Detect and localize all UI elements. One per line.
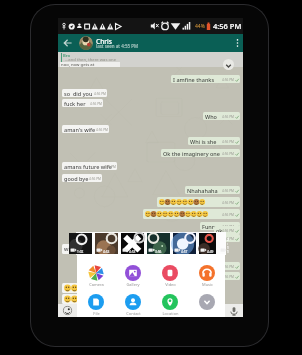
button[interactable]: ok xyxy=(214,226,240,234)
staticText: so did you xyxy=(64,90,93,97)
button[interactable]: amans future wife xyxy=(62,162,117,170)
button[interactable]: 4:56 PM xyxy=(157,197,240,207)
button[interactable]: Record voice message xyxy=(229,306,239,316)
button[interactable]: 4:56 PM xyxy=(62,283,96,293)
staticText: Who xyxy=(205,113,217,120)
staticText: Bro xyxy=(63,53,71,59)
staticText: File xyxy=(93,311,100,316)
button[interactable]: Whi is she xyxy=(188,137,240,145)
button[interactable]: Recent media xyxy=(147,233,170,254)
staticText: Gallery xyxy=(126,282,140,287)
staticText: 4:56 PM xyxy=(222,201,234,205)
staticText: Contact xyxy=(126,311,141,316)
button[interactable]: aman's wife xyxy=(62,125,109,133)
button[interactable]: Contact xyxy=(115,294,151,316)
button[interactable]: Music xyxy=(189,265,225,287)
button[interactable]: Video xyxy=(152,265,188,287)
button[interactable]: good bye xyxy=(62,174,102,182)
button[interactable]: yes xyxy=(210,262,240,270)
staticText: Chris xyxy=(96,37,112,46)
staticText: 4:56 PM xyxy=(222,213,234,217)
staticText: 4:56 PM xyxy=(222,229,234,233)
staticText: 4:56 PM xyxy=(222,115,234,119)
button[interactable]: More options xyxy=(232,34,243,52)
button[interactable]: Recent media xyxy=(121,233,144,254)
staticText: noo, now gets at xyxy=(61,62,95,67)
staticText: aman's wife xyxy=(64,126,96,133)
staticText: Whi is she xyxy=(190,138,217,145)
button[interactable]: I amfine thanks xyxy=(171,75,240,83)
staticText: 1:02 xyxy=(77,250,84,254)
staticText: Camera xyxy=(89,282,104,287)
button[interactable]: Location xyxy=(152,294,188,316)
button[interactable]: 4:56 PM xyxy=(143,209,240,219)
button[interactable]: Recent media xyxy=(69,233,92,254)
staticText: no xyxy=(214,273,221,280)
staticText: 4:56 PM xyxy=(222,275,234,279)
staticText: Music xyxy=(202,282,213,287)
button[interactable]: hm xyxy=(214,234,240,242)
staticText: ok xyxy=(216,227,223,234)
button[interactable]: Who xyxy=(203,112,240,120)
button[interactable]: Close attachments xyxy=(189,294,225,310)
staticText: Nhahahaha xyxy=(187,187,218,194)
staticText: 4:56 PM xyxy=(213,21,242,31)
staticText: what xyxy=(64,245,78,252)
button[interactable]: Back xyxy=(60,34,76,52)
staticText: 44% xyxy=(195,23,205,30)
button[interactable]: Emoji xyxy=(63,306,72,315)
staticText: 4:56 PM xyxy=(89,177,101,181)
staticText: 4:56 PM xyxy=(83,298,95,302)
staticText: 4:56 PM xyxy=(96,128,108,132)
staticText: yes xyxy=(212,263,221,270)
staticText: 4:56 PM xyxy=(222,78,234,82)
staticText: Video xyxy=(165,282,176,287)
staticText: 4:56 PM xyxy=(222,140,234,144)
staticText: Funny xyxy=(202,223,219,230)
staticText: 4:57 xyxy=(181,250,188,254)
button[interactable]: Funny xyxy=(200,222,240,230)
button[interactable]: no xyxy=(212,272,240,280)
staticText: good bye xyxy=(64,175,89,182)
staticText: 3:56 xyxy=(155,250,162,254)
staticText: 4:56 PM xyxy=(222,265,234,269)
button[interactable]: Recent media xyxy=(173,233,196,254)
staticText: 4:56 PM xyxy=(222,152,234,156)
staticText: ...and then, there was one xyxy=(65,57,117,63)
button[interactable]: so did you xyxy=(62,89,107,97)
button[interactable]: File xyxy=(78,294,114,316)
button[interactable]: fuck her xyxy=(62,99,103,107)
staticText: Location xyxy=(162,311,179,316)
staticText: 4:56 PM xyxy=(222,189,234,193)
staticText: 4:56 PM xyxy=(222,237,234,241)
button[interactable]: Recent media xyxy=(199,233,216,254)
button[interactable]: Gallery xyxy=(115,265,151,287)
staticText: 4:56 PM xyxy=(104,165,116,169)
button[interactable]: 4:56 PM xyxy=(62,294,96,304)
staticText: 4:49 xyxy=(207,250,214,254)
button[interactable]: Nhahahaha xyxy=(185,186,240,194)
staticText: I amfine thanks xyxy=(173,76,215,83)
button[interactable]: Scroll to bottom xyxy=(223,59,234,70)
staticText: 4:56 PM xyxy=(90,102,102,106)
button[interactable]: Recent media xyxy=(95,233,118,254)
staticText: 4:56 PM xyxy=(222,225,234,229)
staticText: amans future wife xyxy=(64,163,112,170)
staticText: fuck her xyxy=(64,100,86,107)
button[interactable]: Camera xyxy=(78,265,114,287)
staticText: 4:53 xyxy=(103,250,110,254)
button[interactable]: Ok the imaginery one xyxy=(161,149,240,157)
staticText: last seen at 4:55 PM xyxy=(96,43,139,49)
staticText: Ok the imaginery one xyxy=(163,150,220,157)
staticText: 4:56 PM xyxy=(94,92,106,96)
staticText: 4:53 xyxy=(129,250,136,254)
